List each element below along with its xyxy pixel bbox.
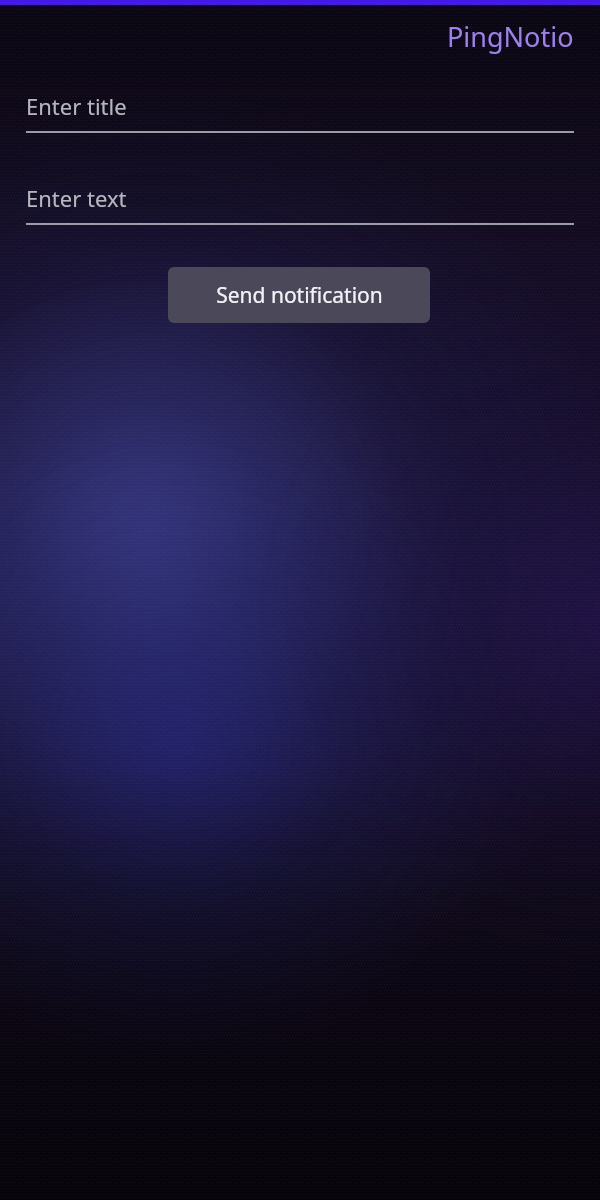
staticText: Enter title: [26, 91, 127, 121]
button[interactable]: Send notification: [168, 267, 430, 323]
staticText: PingNotio: [447, 18, 574, 55]
button[interactable]: Enter text: [26, 181, 574, 225]
button[interactable]: Enter title: [26, 89, 574, 133]
staticText: Enter text: [26, 183, 127, 213]
staticText: Send notification: [216, 281, 383, 310]
